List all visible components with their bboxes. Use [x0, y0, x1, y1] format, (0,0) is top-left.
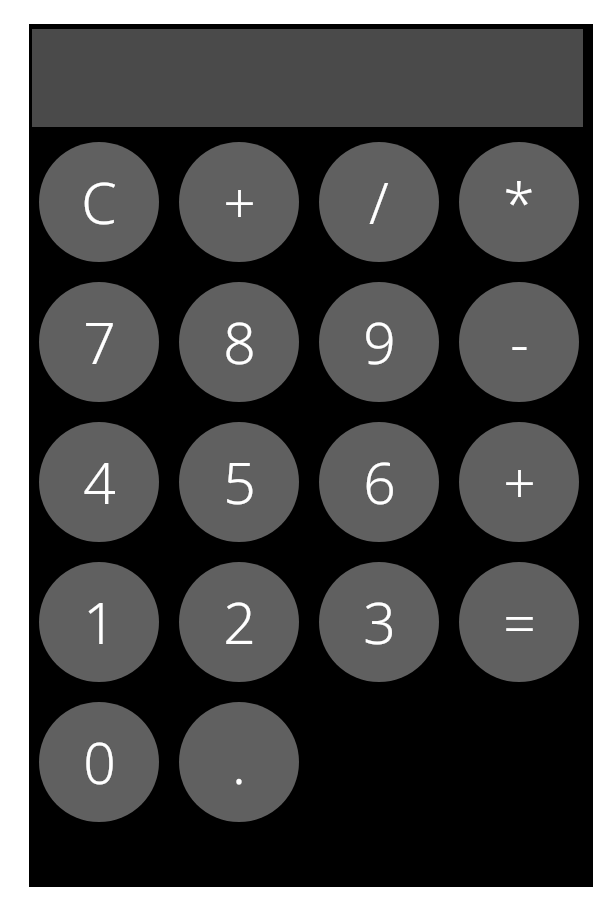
button[interactable]: 5	[179, 422, 299, 542]
button[interactable]: 0	[39, 702, 159, 822]
button[interactable]: 3	[319, 562, 439, 682]
staticText: -	[510, 303, 529, 381]
staticText: 1	[83, 583, 116, 661]
staticText: 4	[83, 443, 116, 521]
staticText: .	[232, 723, 246, 801]
staticText: 6	[363, 443, 396, 521]
staticText: 9	[363, 303, 396, 381]
button[interactable]: .	[179, 702, 299, 822]
button[interactable]: 8	[179, 282, 299, 402]
button[interactable]: =	[459, 562, 579, 682]
staticText: =	[503, 583, 536, 661]
staticText: C	[81, 163, 117, 241]
button[interactable]: 2	[179, 562, 299, 682]
staticText: 3	[363, 583, 396, 661]
button[interactable]: C	[39, 142, 159, 262]
staticText: +	[223, 163, 256, 241]
staticText: 5	[223, 443, 256, 521]
button[interactable]: 6	[319, 422, 439, 542]
button[interactable]: 1	[39, 562, 159, 682]
button[interactable]: -	[459, 282, 579, 402]
button[interactable]: +	[459, 422, 579, 542]
button[interactable]: 9	[319, 282, 439, 402]
staticText: 8	[223, 303, 256, 381]
button[interactable]: 4	[39, 422, 159, 542]
staticText: 0	[83, 723, 116, 801]
button[interactable]: *	[459, 142, 579, 262]
staticText: 2	[223, 583, 256, 661]
button[interactable]: /	[319, 142, 439, 262]
button[interactable]: 7	[39, 282, 159, 402]
staticText: *	[503, 163, 535, 241]
staticText: +	[503, 443, 536, 521]
staticText: 7	[83, 303, 116, 381]
button[interactable]: +	[179, 142, 299, 262]
staticText: /	[369, 163, 389, 241]
